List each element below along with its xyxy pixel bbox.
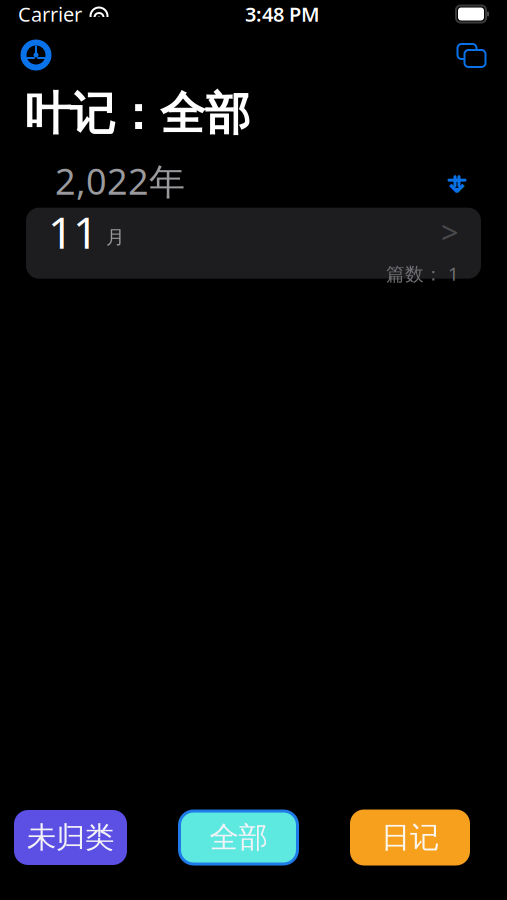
button[interactable]: Categories (449, 36, 493, 74)
button[interactable]: 未归类 (14, 810, 127, 865)
staticText: > (441, 211, 459, 252)
button[interactable]: 全部 (177, 809, 299, 866)
staticText: 3:48 PM (245, 1, 320, 27)
staticText: Carrier (18, 1, 82, 27)
staticText: 11 (48, 203, 98, 261)
staticText: 日记 (381, 819, 439, 855)
button[interactable]: 11 (26, 208, 481, 279)
staticText: 月 (106, 226, 125, 249)
staticText: ⌄ (442, 161, 471, 200)
staticText: 篇数： 1 (386, 261, 459, 286)
staticText: 全部 (209, 819, 267, 855)
staticText: 叶记：全部 (25, 86, 250, 142)
staticText: 2,022年 (55, 157, 185, 205)
button[interactable]: 2,022年 (0, 154, 507, 208)
button[interactable]: 日记 (350, 809, 470, 865)
button[interactable]: Settings (14, 36, 58, 74)
staticText: 未归类 (27, 819, 114, 855)
